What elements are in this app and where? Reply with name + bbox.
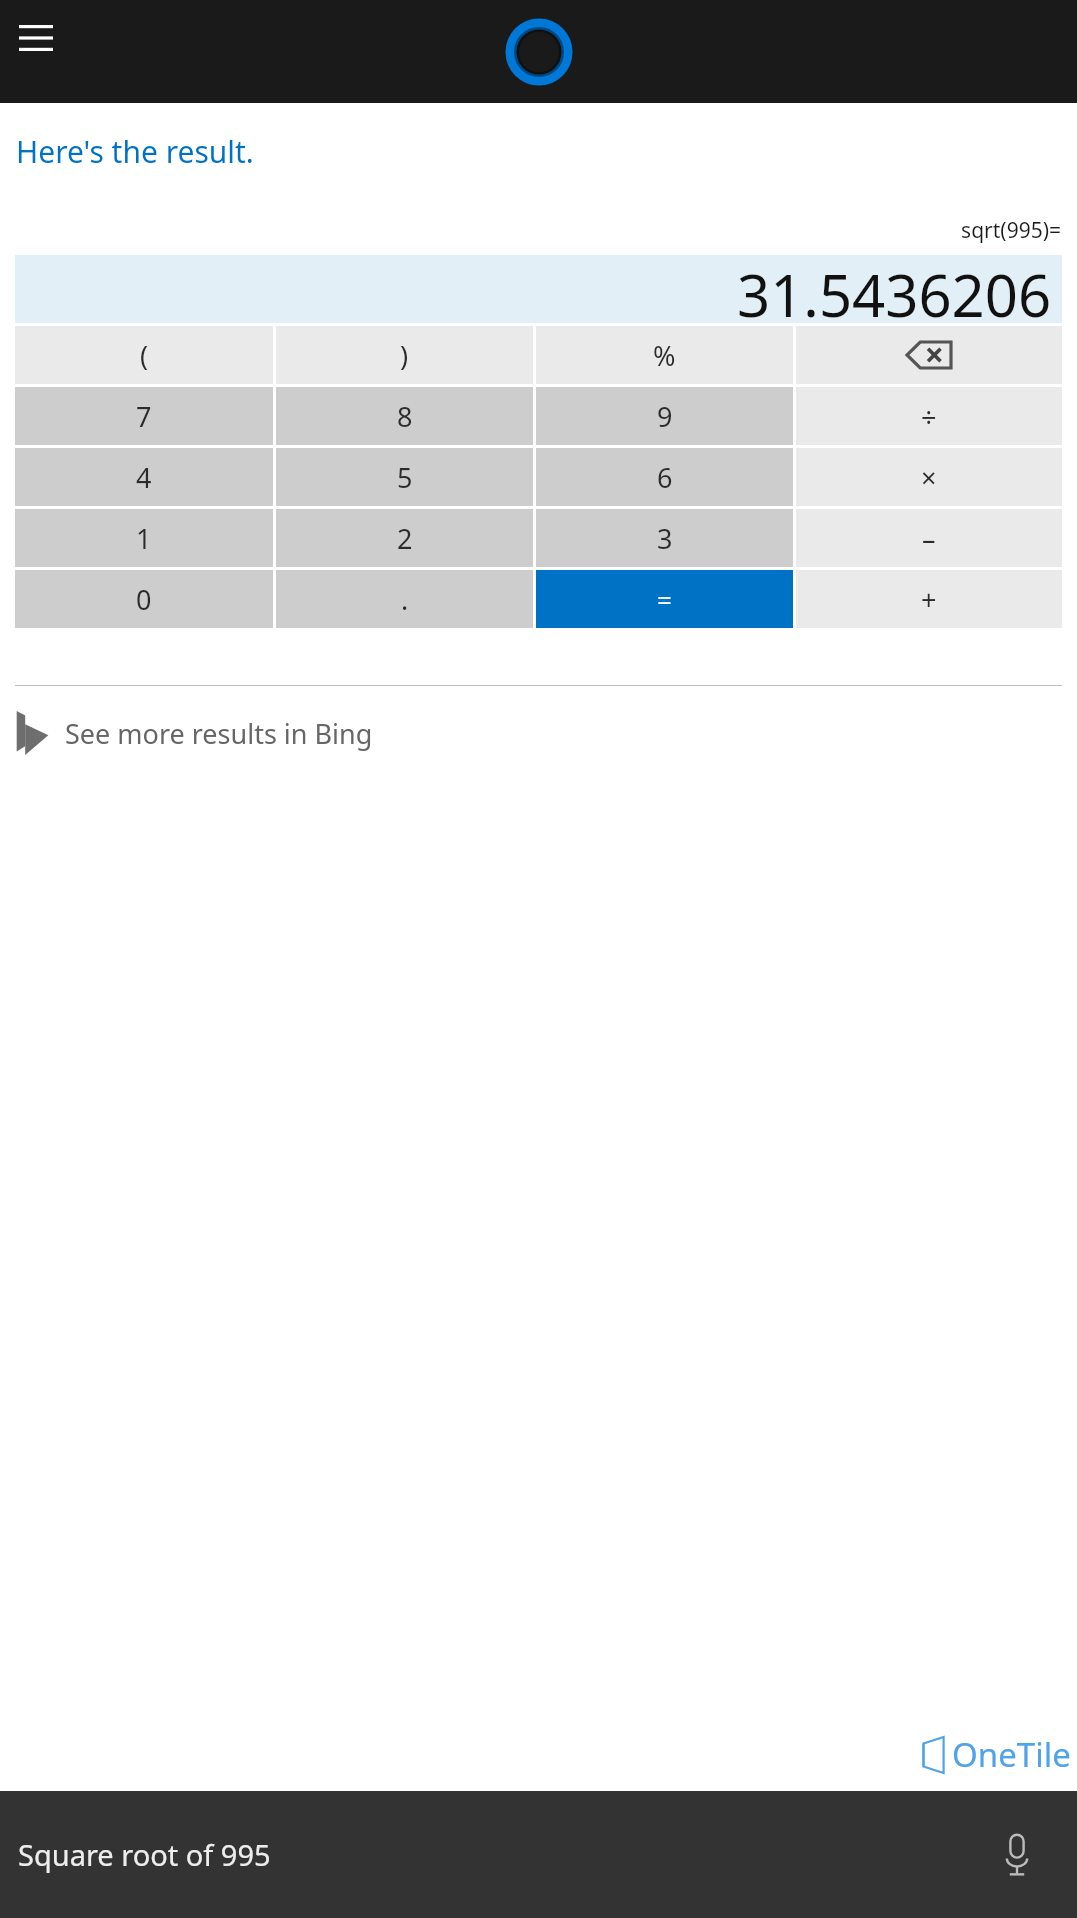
button[interactable]: 0	[15, 570, 273, 628]
button[interactable]: 6	[536, 448, 793, 506]
button[interactable]: 1	[15, 509, 273, 567]
staticText: 7	[136, 398, 152, 435]
button[interactable]: Backspace	[796, 326, 1062, 384]
staticText: 8	[397, 398, 413, 435]
button[interactable]: )	[276, 326, 533, 384]
button[interactable]: –	[796, 509, 1062, 567]
staticText: –	[922, 520, 936, 557]
staticText: 6	[657, 459, 673, 496]
staticText: %	[653, 337, 676, 374]
staticText: 0	[136, 581, 152, 618]
staticText: 9	[657, 398, 673, 435]
button[interactable]: 4	[15, 448, 273, 506]
staticText: Square root of 995	[18, 1835, 271, 1874]
button[interactable]: 9	[536, 387, 793, 445]
button[interactable]: (	[15, 326, 273, 384]
staticText: OneTile	[952, 1732, 1071, 1777]
staticText: ÷	[921, 398, 937, 435]
button[interactable]: ×	[796, 448, 1062, 506]
button[interactable]: Square root of 995	[18, 1791, 271, 1918]
button[interactable]: 7	[15, 387, 273, 445]
staticText: 3	[657, 520, 673, 557]
staticText: (	[140, 337, 149, 374]
button[interactable]: %	[536, 326, 793, 384]
button[interactable]: +	[796, 570, 1062, 628]
staticText: 31.5436206	[737, 255, 1052, 323]
button[interactable]: Cortana	[503, 16, 575, 88]
button[interactable]: 5	[276, 448, 533, 506]
button[interactable]: 8	[276, 387, 533, 445]
button[interactable]: 3	[536, 509, 793, 567]
button[interactable]: Microphone	[957, 1791, 1077, 1918]
staticText: 4	[136, 459, 152, 496]
staticText: .	[401, 581, 409, 618]
staticText: Here's the result.	[16, 131, 254, 172]
staticText: 1	[136, 520, 152, 557]
staticText: )	[400, 337, 409, 374]
staticText: +	[921, 581, 937, 618]
button[interactable]: See more results in Bing	[15, 706, 1077, 760]
staticText: =	[657, 582, 672, 617]
button[interactable]: Menu	[12, 14, 60, 62]
button[interactable]: ÷	[796, 387, 1062, 445]
staticText: 5	[397, 459, 413, 496]
button[interactable]: =	[536, 570, 793, 628]
staticText: 2	[397, 520, 413, 557]
button[interactable]: 2	[276, 509, 533, 567]
staticText: ×	[921, 459, 937, 496]
button[interactable]: .	[276, 570, 533, 628]
staticText: sqrt(995)=	[0, 216, 1061, 245]
staticText: See more results in Bing	[65, 715, 373, 752]
